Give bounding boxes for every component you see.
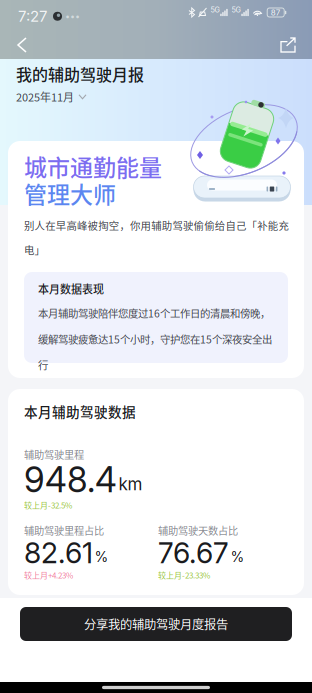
button[interactable]: Back <box>4 31 40 59</box>
staticText: 本月辅助驾驶陪伴您度过16个工作日的清晨和傍晚，缓解驾驶疲惫达15个小时，守护您… <box>38 300 272 378</box>
staticText: 76.67 <box>158 539 229 567</box>
button[interactable]: 2025年11月 <box>14 86 88 107</box>
staticText: 82.61 <box>24 539 93 567</box>
staticText: 辅助驾驶天数占比 <box>158 524 238 537</box>
staticText: 较上月-32.5% <box>24 500 72 510</box>
staticText: 5G <box>210 6 219 13</box>
staticText: 城市通勤能量 <box>24 152 162 180</box>
staticText: 我的辅助驾驶月报 <box>16 64 144 84</box>
staticText: 948.4 <box>24 463 117 496</box>
staticText: 辅助驾驶里程占比 <box>24 524 104 537</box>
staticText: 管理大师 <box>24 179 116 207</box>
staticText: 较上月-23.33% <box>158 570 210 580</box>
staticText: % <box>230 550 244 564</box>
staticText: 分享我的辅助驾驶月度报告 <box>84 616 228 631</box>
staticText: % <box>94 550 108 564</box>
staticText: 87 <box>271 9 281 16</box>
staticText: 本月数据表现 <box>38 282 104 295</box>
staticText: 别人在早高峰被掏空，你用辅助驾驶偷偷给自己「补能充电」 <box>24 213 288 262</box>
staticText: 较上月+4.23% <box>24 570 73 580</box>
staticText: 辅助驾驶里程 <box>24 448 84 461</box>
staticText: ••• <box>65 12 80 21</box>
staticText: km <box>118 476 142 492</box>
staticText: 7:27 <box>18 9 47 23</box>
staticText: 5G <box>232 6 241 13</box>
staticText: 2025年11月 <box>16 90 74 103</box>
button[interactable]: 分享我的辅助驾驶月度报告 <box>20 607 292 641</box>
button[interactable]: Share <box>270 31 306 59</box>
staticText: 本月辅助驾驶数据 <box>24 403 136 420</box>
